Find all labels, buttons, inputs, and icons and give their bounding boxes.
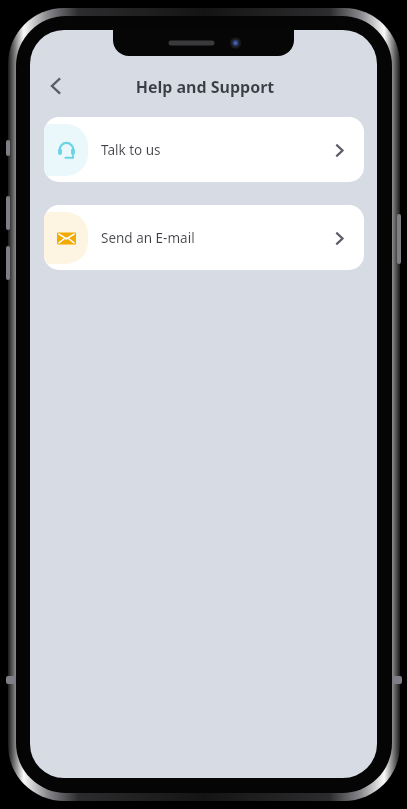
staticText: Help and Support — [90, 76, 320, 98]
button[interactable]: Back — [36, 66, 76, 106]
staticText: Talk to us — [101, 141, 161, 159]
button[interactable]: Talk to us — [44, 117, 364, 182]
button[interactable]: Send an E-mail — [44, 205, 364, 270]
staticText: Send an E-mail — [101, 229, 195, 247]
